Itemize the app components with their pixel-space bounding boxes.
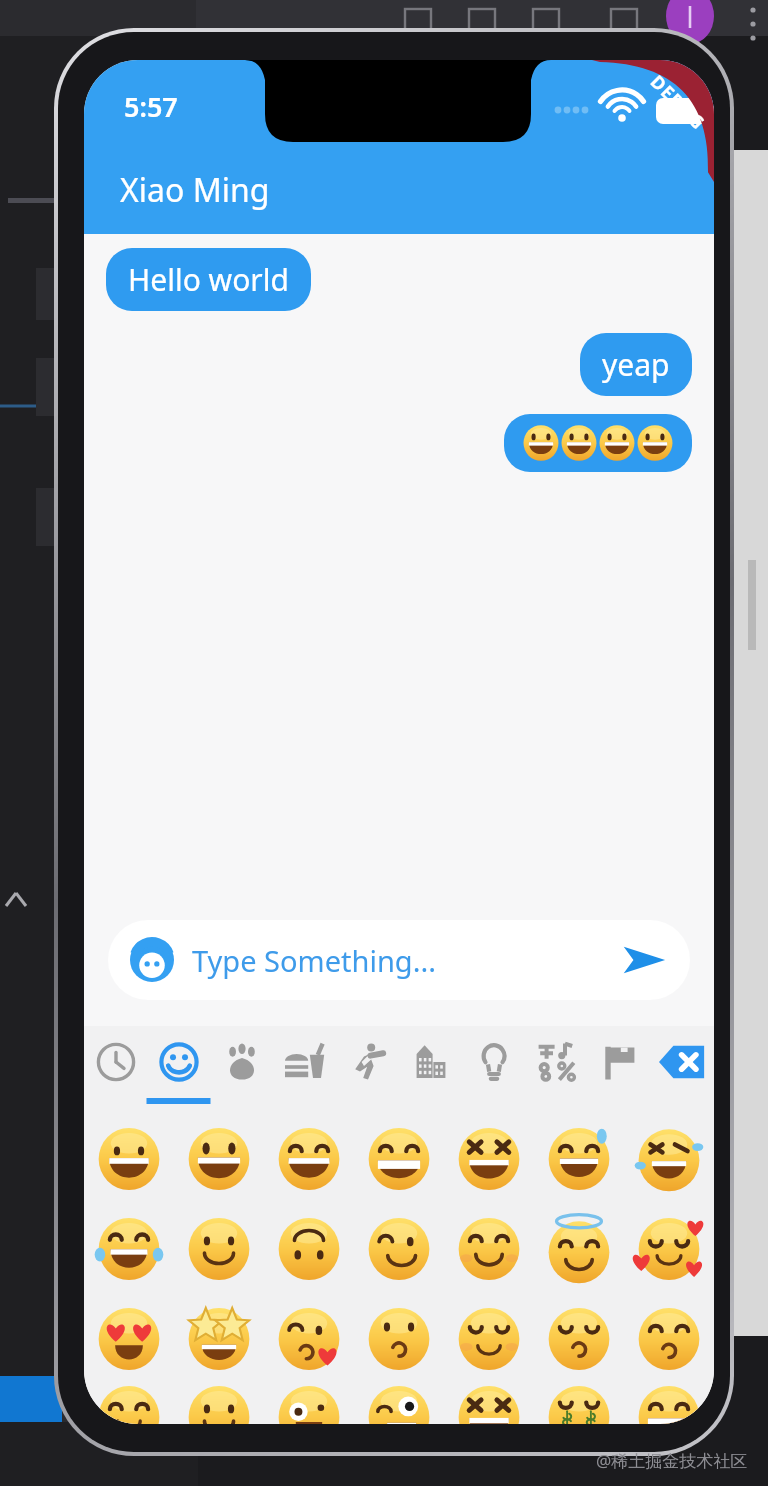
button[interactable]: squint [444,1384,534,1424]
button[interactable]: relaxed [444,1294,534,1384]
button[interactable]: kissClosed [534,1294,624,1384]
button[interactable]: Send [620,936,668,984]
button[interactable]: Recent [84,1026,147,1098]
button[interactable]: beam [624,1384,714,1424]
staticText: 5:57 [124,88,178,125]
button[interactable]: Backspace [651,1026,714,1098]
button[interactable]: slight [174,1204,264,1294]
button[interactable]: sweat [534,1114,624,1204]
button[interactable]: kissSmile [624,1294,714,1384]
button[interactable]: Animals [210,1026,273,1098]
button[interactable]: halo [534,1204,624,1294]
button[interactable]: upside [264,1204,354,1294]
button[interactable]: beam [354,1114,444,1204]
button[interactable]: wink [354,1204,444,1294]
button[interactable]: Travel [399,1026,462,1098]
button[interactable]: rofl [624,1114,714,1204]
button[interactable]: grin [84,1114,174,1204]
button[interactable]: blush [444,1204,534,1294]
button[interactable]: grinBig [174,1114,264,1204]
button[interactable]: Flags [588,1026,651,1098]
button[interactable]: Emoji picker [108,920,690,1000]
button[interactable]: Food [273,1026,336,1098]
button[interactable]: Activity [336,1026,399,1098]
button[interactable]: Hello world [106,248,311,311]
button[interactable]: money [534,1384,624,1424]
button[interactable]: tongue [84,1384,174,1424]
button[interactable]: squint [444,1114,534,1204]
button[interactable]: star [174,1294,264,1384]
staticText: Type Something... [192,941,436,980]
staticText: Xiao Ming [120,168,270,212]
button[interactable]: zany2 [354,1384,444,1424]
button[interactable]: kissHeart [264,1294,354,1384]
staticText: yeap [602,344,670,385]
staticText: Hello world [128,259,289,300]
button[interactable]: zany [264,1384,354,1424]
button[interactable]: yeap [580,333,692,396]
button[interactable]: Objects [462,1026,525,1098]
button[interactable] [504,414,692,472]
button[interactable]: slight [174,1384,264,1424]
button[interactable]: grinSmile [264,1114,354,1204]
staticText: @稀土掘金技术社区 [596,1449,748,1472]
staticText: DEBUG [645,70,711,135]
button[interactable]: kiss [354,1294,444,1384]
button[interactable]: Symbols [525,1026,588,1098]
button[interactable]: joy [84,1204,174,1294]
button[interactable]: Emoji picker [130,938,174,982]
button[interactable]: hearts3 [624,1204,714,1294]
button[interactable]: heartEyes [84,1294,174,1384]
button[interactable]: Smileys [147,1026,210,1098]
